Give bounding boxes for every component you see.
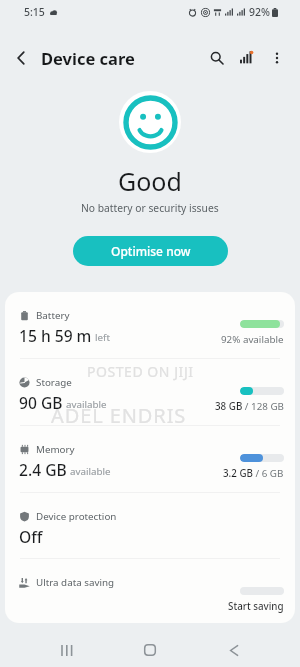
staticText: 92% available — [221, 333, 284, 346]
button[interactable]: Storage — [5, 359, 295, 425]
staticText: Device protection — [36, 510, 117, 523]
staticText: Good — [118, 164, 182, 198]
staticText: Ultra data saving — [36, 576, 114, 589]
button[interactable]: Back — [214, 630, 254, 667]
button[interactable]: More options — [262, 43, 292, 73]
staticText: Optimise now — [111, 243, 191, 259]
staticText: Memory — [36, 443, 75, 456]
staticText: ADEL ENDRIS — [51, 402, 187, 429]
staticText: left — [95, 331, 110, 344]
button[interactable]: Home — [130, 630, 170, 667]
staticText: available — [70, 465, 111, 478]
staticText: 5:15 — [24, 5, 45, 19]
button[interactable]: Recents — [46, 630, 86, 667]
staticText: 38 GB / 128 GB — [215, 400, 284, 413]
staticText: POSTED ON JIJI — [87, 362, 194, 381]
button[interactable]: Battery — [5, 292, 295, 358]
button[interactable]: Navigate up — [6, 43, 36, 73]
staticText: Battery — [36, 309, 70, 322]
button[interactable]: Optimise now — [73, 236, 228, 266]
staticText: 3.2 GB / 6 GB — [223, 467, 284, 480]
staticText: Storage — [36, 376, 72, 389]
staticText: available — [66, 398, 107, 411]
button[interactable]: Ultra data saving — [5, 559, 295, 623]
staticText: Device care — [41, 47, 135, 69]
staticText: 15 h 59 m — [19, 325, 92, 346]
button[interactable]: Device protection — [5, 493, 295, 558]
staticText: Start saving — [228, 600, 284, 613]
button[interactable]: Search — [202, 43, 232, 73]
button[interactable]: Memory — [5, 426, 295, 492]
staticText: No battery or security issues — [81, 201, 219, 215]
staticText: 90 GB — [19, 392, 63, 413]
staticText: 92% — [249, 5, 270, 19]
staticText: 2.4 GB — [19, 459, 67, 480]
staticText: Off — [19, 526, 43, 547]
button[interactable]: Usage statistics — [232, 43, 262, 73]
